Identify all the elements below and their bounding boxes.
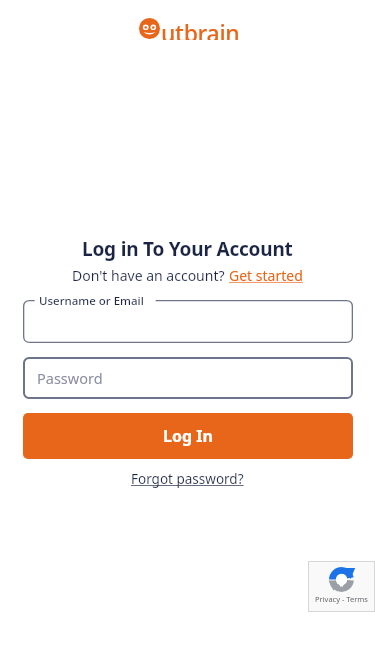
staticText: Log in To Your Account — [82, 236, 293, 262]
button[interactable]: Outbrain — [139, 17, 240, 40]
staticText: Don't have an account? — [72, 266, 229, 285]
staticText: Password — [37, 368, 103, 388]
button[interactable]: Password — [23, 357, 353, 399]
staticText: Forgot password? — [131, 470, 244, 488]
staticText: utbrain — [161, 17, 240, 40]
button[interactable]: Log In — [23, 413, 353, 459]
staticText: Privacy - Terms — [315, 594, 368, 604]
button[interactable]: Forgot password? — [131, 470, 244, 488]
staticText: Username or Email — [39, 293, 144, 309]
staticText: Log In — [163, 425, 213, 447]
button[interactable]: Get started — [229, 266, 303, 285]
button[interactable]: reCAPTCHA privacy and terms — [308, 561, 375, 612]
button[interactable] — [23, 300, 353, 343]
staticText: Get started — [229, 266, 303, 285]
